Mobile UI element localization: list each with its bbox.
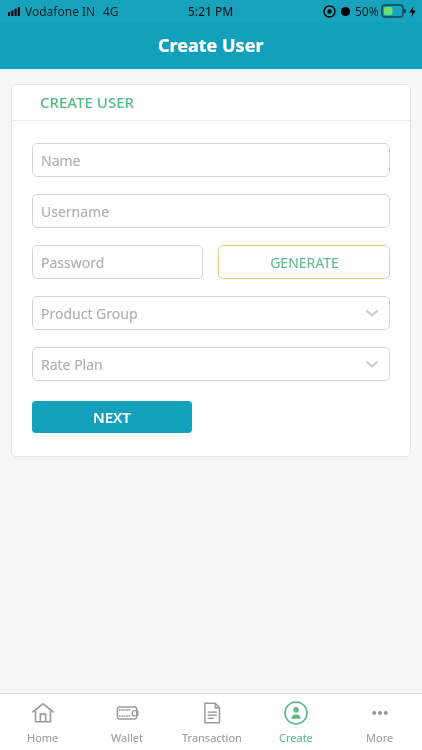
staticText: Home [27, 730, 59, 745]
staticText: Create User [158, 33, 264, 58]
staticText: Product Group [41, 304, 138, 323]
button[interactable]: Password [32, 245, 203, 279]
button[interactable]: Create [254, 694, 338, 750]
staticText: Password [41, 253, 105, 272]
staticText: Vodafone IN [25, 3, 96, 19]
staticText: 4G [103, 3, 119, 19]
button[interactable]: Rate Plan [32, 347, 390, 381]
staticText: More [366, 730, 394, 745]
staticText: GENERATE [270, 253, 339, 272]
staticText: 50% [355, 3, 379, 19]
staticText: Name [41, 151, 81, 170]
button[interactable]: More [338, 694, 422, 750]
button[interactable]: Transaction [170, 694, 254, 750]
staticText: 5:21 PM [188, 3, 234, 19]
staticText: Transaction [182, 730, 242, 745]
button[interactable]: Username [32, 194, 390, 228]
staticText: NEXT [93, 407, 131, 427]
staticText: CREATE USER [40, 92, 134, 112]
button[interactable]: GENERATE [218, 245, 390, 279]
button[interactable]: NEXT [32, 401, 192, 433]
button[interactable]: Name [32, 143, 390, 177]
button[interactable]: Product Group [32, 296, 390, 330]
staticText: Username [41, 202, 110, 221]
button[interactable]: Wallet [85, 694, 170, 750]
staticText: Wallet [111, 730, 144, 745]
button[interactable]: Home [0, 694, 85, 750]
staticText: Rate Plan [41, 355, 103, 374]
staticText: Create [279, 730, 313, 745]
